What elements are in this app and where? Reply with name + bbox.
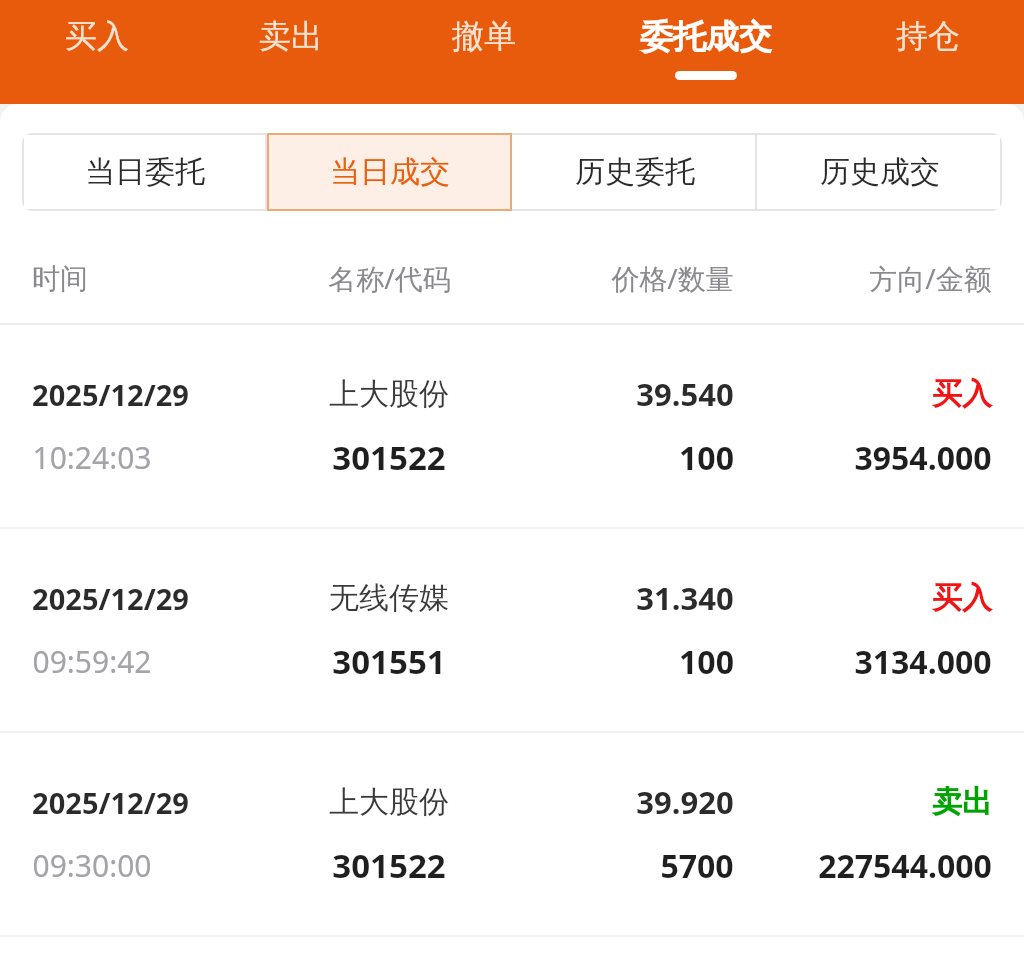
staticText: 买入 bbox=[65, 16, 129, 56]
button[interactable]: 委托成交 bbox=[580, 0, 831, 104]
button[interactable]: 2025/12/29 bbox=[0, 733, 1024, 935]
staticText: 历史委托 bbox=[575, 153, 695, 191]
staticText: 09:59:42 bbox=[32, 641, 152, 682]
button[interactable]: 当日委托 bbox=[22, 133, 267, 211]
staticText: 100 bbox=[679, 640, 734, 684]
staticText: 委托成交 bbox=[640, 16, 772, 58]
staticText: 100 bbox=[679, 436, 734, 480]
staticText: 买入 bbox=[932, 579, 992, 617]
staticText: 39.920 bbox=[636, 781, 734, 823]
staticText: 39.540 bbox=[636, 373, 734, 415]
staticText: 301522 bbox=[332, 843, 446, 888]
staticText: 301551 bbox=[332, 639, 446, 684]
staticText: 当日成交 bbox=[330, 153, 450, 191]
staticText: 卖出 bbox=[932, 783, 992, 821]
staticText: 301522 bbox=[332, 435, 446, 480]
staticText: 3134.000 bbox=[854, 640, 992, 684]
staticText: 价格/数量 bbox=[611, 259, 734, 297]
button[interactable]: 持仓 bbox=[831, 0, 1024, 104]
button[interactable]: 当日成交 bbox=[267, 133, 512, 211]
staticText: 名称/代码 bbox=[328, 259, 451, 297]
staticText: 2025/12/29 bbox=[32, 579, 189, 618]
staticText: 5700 bbox=[660, 844, 734, 888]
button[interactable]: 撤单 bbox=[387, 0, 580, 104]
staticText: 31.340 bbox=[636, 577, 734, 619]
staticText: 上大股份 bbox=[329, 783, 449, 821]
button[interactable]: 2025/12/29 bbox=[0, 529, 1024, 731]
staticText: 方向/金额 bbox=[869, 259, 992, 297]
staticText: 09:30:00 bbox=[32, 845, 152, 886]
button[interactable]: 2025/12/29 bbox=[0, 325, 1024, 527]
button[interactable]: 卖出 bbox=[194, 0, 387, 104]
staticText: 227544.000 bbox=[818, 844, 992, 888]
staticText: 当日委托 bbox=[85, 153, 205, 191]
staticText: 上大股份 bbox=[329, 375, 449, 413]
staticText: 2025/12/29 bbox=[32, 783, 189, 822]
staticText: 撤单 bbox=[452, 16, 516, 56]
staticText: 买入 bbox=[932, 375, 992, 413]
button[interactable]: 历史委托 bbox=[512, 133, 757, 211]
staticText: 卖出 bbox=[259, 16, 323, 56]
staticText: 3954.000 bbox=[854, 436, 992, 480]
staticText: 无线传媒 bbox=[329, 579, 449, 617]
staticText: 历史成交 bbox=[820, 153, 940, 191]
staticText: 10:24:03 bbox=[32, 437, 152, 478]
staticText: 2025/12/29 bbox=[32, 375, 189, 414]
staticText: 时间 bbox=[32, 261, 88, 296]
staticText: 持仓 bbox=[896, 16, 960, 56]
button[interactable]: 买入 bbox=[0, 0, 194, 104]
button[interactable]: 历史成交 bbox=[757, 133, 1002, 211]
